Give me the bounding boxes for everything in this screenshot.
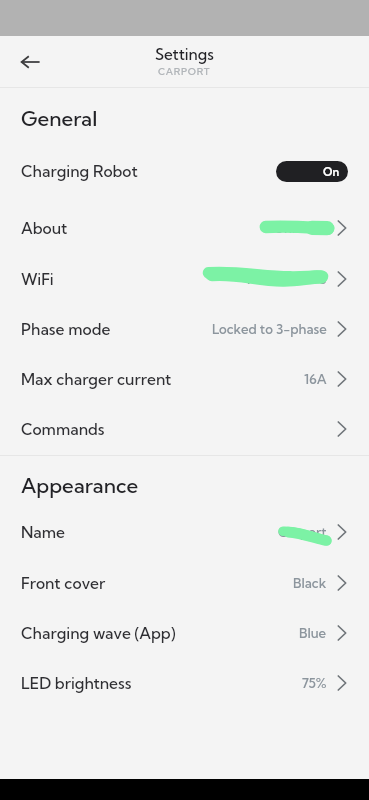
staticText: General	[21, 106, 98, 131]
button[interactable]: Name	[0, 507, 369, 557]
staticText: Blue	[299, 625, 327, 641]
staticText: WiFi	[21, 270, 54, 289]
staticText: On	[323, 165, 340, 179]
staticText: Charging wave (App)	[21, 624, 176, 643]
staticText: Commands	[21, 420, 105, 439]
button[interactable]: Commands	[0, 404, 369, 454]
staticText: Appearance	[21, 473, 139, 498]
staticText: Max charger current	[21, 370, 172, 389]
button[interactable]: Max charger current	[0, 354, 369, 404]
staticText: FRITZ!Box 75	[247, 271, 327, 287]
staticText: Settings	[155, 45, 214, 64]
staticText: Black	[293, 575, 327, 591]
button[interactable]: Phase mode	[0, 304, 369, 354]
staticText: 16A	[304, 371, 327, 387]
button[interactable]: WiFi	[0, 254, 369, 304]
button[interactable]: About	[0, 203, 369, 253]
staticText: Charging Robot	[21, 162, 138, 181]
staticText: Unit 2.10	[274, 220, 327, 236]
staticText: Front cover	[21, 574, 106, 593]
staticText: Name	[21, 523, 66, 542]
staticText: Locked to 3-phase	[212, 321, 327, 337]
staticText: Phase mode	[21, 320, 111, 339]
button[interactable]: Charging wave (App)	[0, 608, 369, 658]
button[interactable]: LED brightness	[0, 658, 369, 708]
staticText: LED brightness	[21, 674, 132, 693]
staticText: CARPORT	[158, 65, 211, 77]
staticText: About	[21, 219, 68, 238]
button[interactable]: Back	[6, 40, 50, 84]
button[interactable]: Charging Robot	[0, 143, 369, 200]
button[interactable]: On	[276, 161, 348, 182]
button[interactable]: Front cover	[0, 558, 369, 608]
staticText: 75%	[302, 675, 327, 691]
staticText: Carport	[278, 524, 327, 540]
